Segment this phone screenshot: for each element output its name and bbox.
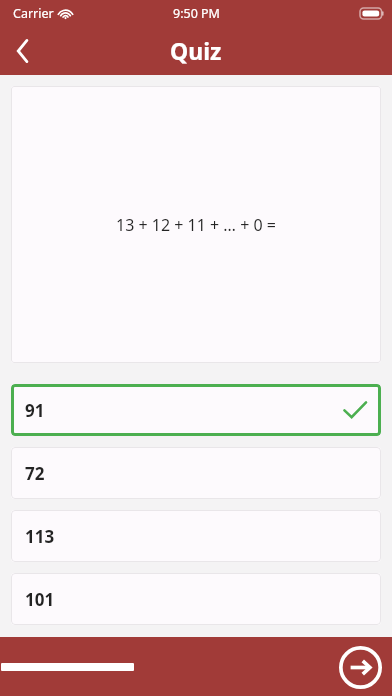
staticText: Quiz xyxy=(170,35,222,66)
button[interactable]: 91 xyxy=(11,384,381,436)
button[interactable]: Back xyxy=(0,28,46,74)
staticText: 9:50 PM xyxy=(173,5,220,22)
button[interactable]: 72 xyxy=(11,447,381,499)
staticText: Carrier xyxy=(13,5,54,22)
staticText: 113 xyxy=(25,525,55,548)
staticText: 91 xyxy=(25,399,45,422)
button[interactable]: 101 xyxy=(11,573,381,625)
button[interactable]: Next question xyxy=(337,644,383,690)
staticText: 72 xyxy=(25,462,45,485)
staticText: 13 + 12 + 11 + … + 0 = xyxy=(116,214,276,236)
button[interactable]: 113 xyxy=(11,510,381,562)
staticText: 101 xyxy=(25,588,55,611)
